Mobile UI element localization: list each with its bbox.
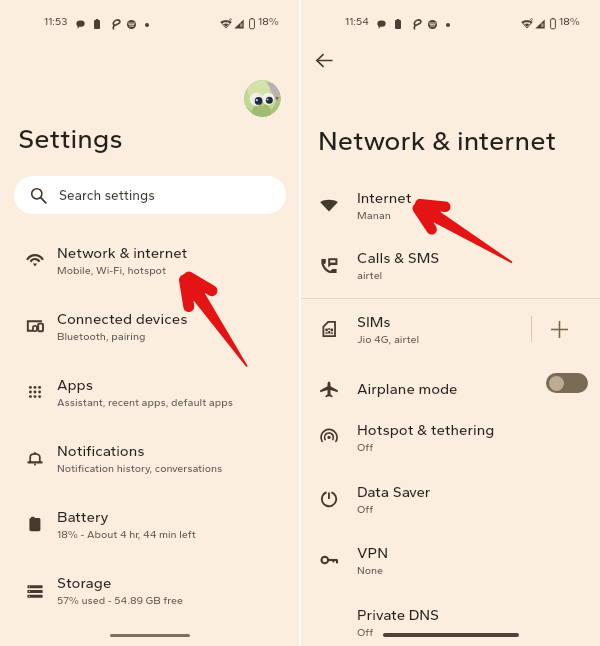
button[interactable]: Storage	[0, 565, 299, 615]
staticText: 57% used - 54.89 GB free	[57, 594, 183, 607]
staticText: VPN	[357, 544, 388, 562]
staticText: Settings	[18, 122, 123, 155]
staticText: Hotspot & tethering	[357, 421, 495, 439]
staticText: Storage	[57, 574, 112, 592]
staticText: Assistant, recent apps, default apps	[57, 396, 233, 409]
staticText: Battery	[57, 508, 109, 526]
button[interactable]: Add SIM	[532, 305, 600, 353]
staticText: Off	[357, 626, 374, 639]
button[interactable]: Data Saver	[301, 475, 600, 523]
staticText: Network & internet	[318, 124, 556, 157]
button[interactable]: VPN	[301, 536, 600, 584]
button[interactable]: Private DNS	[301, 598, 600, 646]
staticText: Network & internet	[57, 244, 188, 262]
button[interactable]: Back	[310, 46, 338, 74]
button[interactable]: Airplane mode toggle	[546, 373, 588, 393]
staticText: 18%	[258, 15, 279, 28]
staticText: None	[357, 564, 384, 577]
staticText: Calls & SMS	[357, 249, 440, 267]
staticText: Manan	[357, 209, 391, 222]
button[interactable]: Network & internet	[0, 235, 299, 285]
button[interactable]: SIMs	[301, 305, 600, 353]
button[interactable]: Connected devices	[0, 301, 299, 351]
button[interactable]: Internet	[301, 181, 600, 229]
staticText: Off	[357, 503, 374, 516]
staticText: Data Saver	[357, 483, 431, 501]
button[interactable]: Account	[244, 80, 281, 117]
staticText: Connected devices	[57, 310, 188, 328]
staticText: Notification history, conversations	[57, 462, 223, 475]
button[interactable]: Hotspot & tethering	[301, 413, 600, 461]
staticText: Apps	[57, 376, 94, 394]
staticText: Off	[357, 441, 374, 454]
button[interactable]: Calls & SMS	[301, 241, 600, 289]
button[interactable]: Notifications	[0, 433, 299, 483]
button[interactable]: Airplane mode	[301, 365, 600, 413]
staticText: 18%	[559, 15, 580, 28]
staticText: Search settings	[59, 187, 155, 203]
staticText: 11:54	[345, 15, 369, 28]
button[interactable]: Battery	[0, 499, 299, 549]
button[interactable]: Search settings	[14, 176, 286, 214]
staticText: 11:53	[44, 15, 68, 28]
staticText: Mobile, Wi-Fi, hotspot	[57, 264, 167, 277]
button[interactable]: Apps	[0, 367, 299, 417]
staticText: Airplane mode	[357, 380, 458, 398]
staticText: Notifications	[57, 442, 145, 460]
staticText: Private DNS	[357, 606, 439, 624]
staticText: 18% - About 4 hr, 44 min left	[57, 528, 196, 541]
staticText: SIMs	[357, 313, 391, 331]
staticText: Internet	[357, 189, 412, 207]
staticText: Bluetooth, pairing	[57, 330, 146, 343]
staticText: Jio 4G, airtel	[357, 333, 420, 346]
staticText: airtel	[357, 269, 383, 282]
